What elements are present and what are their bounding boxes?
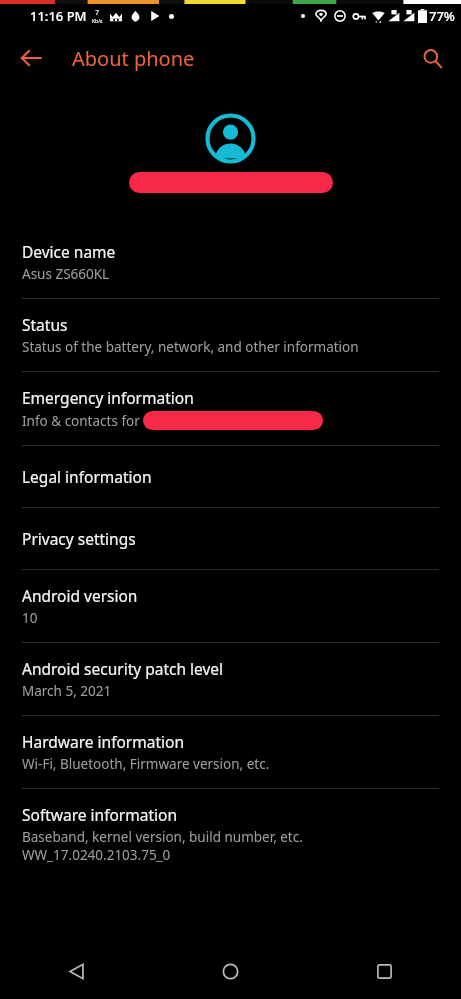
button[interactable]: Software information <box>0 789 461 879</box>
staticText: Device name <box>22 241 116 262</box>
staticText: Software information <box>22 804 177 825</box>
staticText: Emergency information <box>22 387 194 408</box>
staticText: Info & contacts for <box>22 412 140 430</box>
button[interactable]: Recent apps <box>307 944 461 999</box>
staticText: Kb/s <box>92 18 103 25</box>
staticText: Status of the battery, network, and othe… <box>22 338 359 356</box>
staticText: Baseband, kernel version, build number, … <box>22 828 303 846</box>
staticText: 10 <box>22 609 38 627</box>
button[interactable]: Home <box>153 944 307 999</box>
staticText: Android version <box>22 585 138 606</box>
button[interactable]: Privacy settings <box>0 508 461 569</box>
button[interactable]: Search <box>410 36 454 80</box>
button[interactable]: Status <box>0 299 461 371</box>
staticText: 7 <box>95 8 100 18</box>
button[interactable]: Back <box>9 36 53 80</box>
staticText: Legal information <box>22 466 152 487</box>
staticText: Wi-Fi, Bluetooth, Firmware version, etc. <box>22 755 270 773</box>
button[interactable]: Device name <box>0 226 461 298</box>
staticText: Android security patch level <box>22 658 224 679</box>
staticText: March 5, 2021 <box>22 682 112 700</box>
staticText: Privacy settings <box>22 528 136 549</box>
button[interactable]: Android security patch level <box>0 643 461 715</box>
button[interactable]: Hardware information <box>0 716 461 788</box>
button[interactable]: Legal information <box>0 446 461 507</box>
staticText: About phone <box>72 45 195 72</box>
staticText: Status <box>22 314 68 335</box>
button[interactable]: Android version <box>0 570 461 642</box>
staticText: 11:16 PM <box>30 7 87 25</box>
staticText: WW_17.0240.2103.75_0 <box>22 846 171 864</box>
button[interactable]: Emergency information <box>0 372 461 445</box>
staticText: Hardware information <box>22 731 184 752</box>
staticText: Asus ZS660KL <box>22 265 110 283</box>
staticText: 77% <box>429 7 455 25</box>
button[interactable]: Back <box>0 944 153 999</box>
